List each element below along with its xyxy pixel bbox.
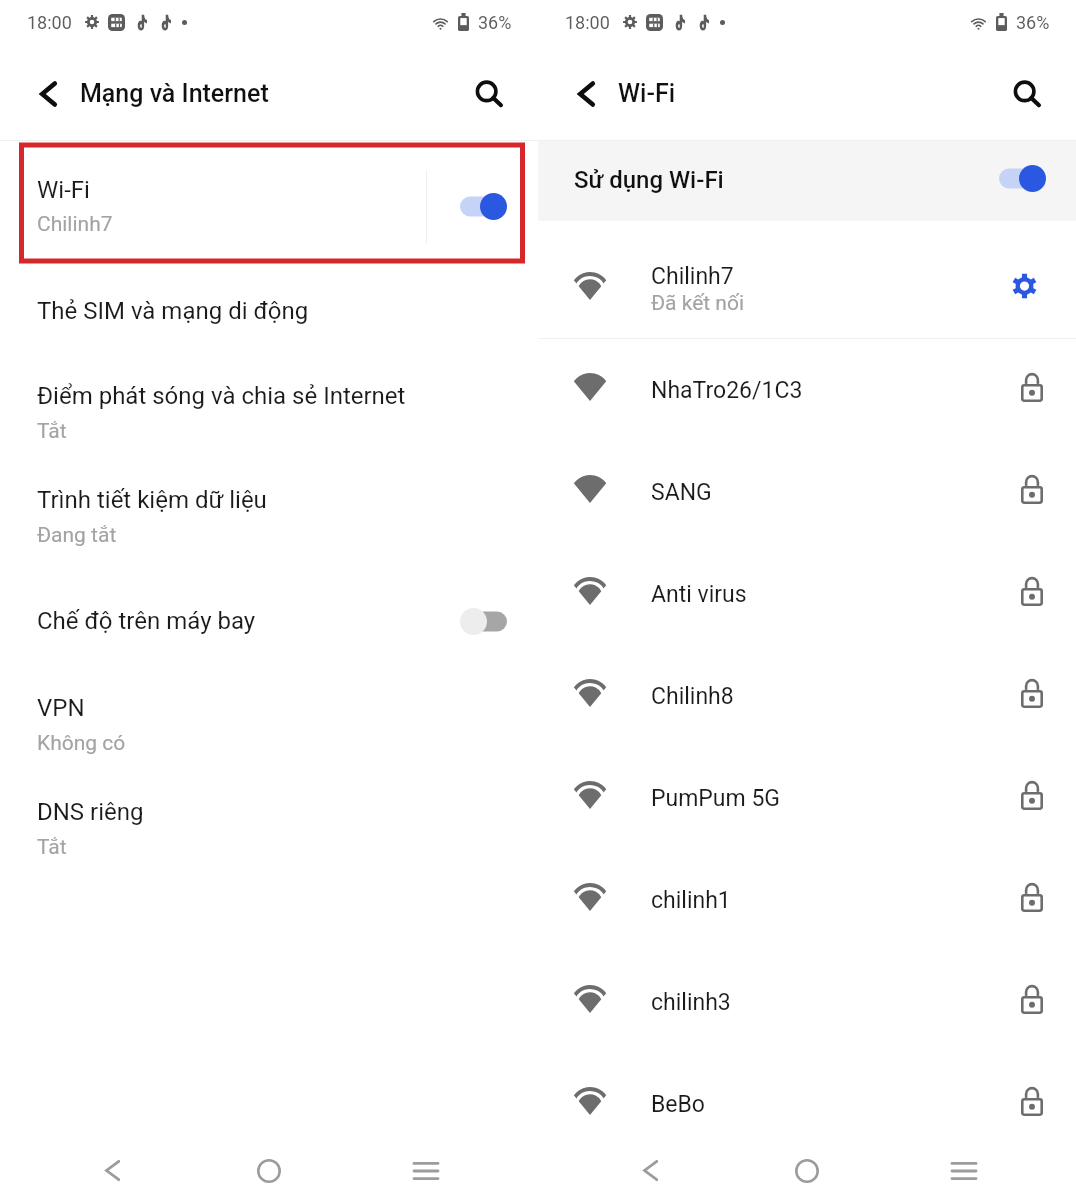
button[interactable]: Search — [989, 47, 1065, 140]
button[interactable]: Recent apps — [885, 1141, 1042, 1200]
button[interactable]: Network settings — [1005, 267, 1049, 311]
button[interactable]: Chế độ trên máy bay — [0, 565, 538, 668]
staticText: Thẻ SIM và mạng di động — [37, 297, 309, 325]
staticText: Chế độ trên máy bay — [37, 607, 460, 635]
button[interactable]: Recent apps — [347, 1141, 504, 1200]
staticText: chilinh1 — [651, 887, 1010, 914]
staticText: DNS riêng — [37, 798, 144, 826]
staticText: Trình tiết kiệm dữ liệu — [37, 486, 267, 514]
staticText: Không có — [37, 731, 126, 756]
staticText: 18:00 — [565, 12, 610, 33]
staticText: VPN — [37, 694, 85, 722]
button[interactable]: Điểm phát sóng và chia sẻ Internet — [0, 357, 538, 461]
staticText: PumPum 5G — [651, 785, 1010, 812]
button[interactable]: NhaTro26/1C3 — [538, 339, 1076, 441]
staticText: Anti virus — [651, 581, 1010, 608]
button[interactable]: Chilinh7 — [538, 221, 1076, 338]
staticText: chilinh3 — [651, 989, 1010, 1016]
staticText: Đang tắt — [37, 523, 117, 548]
button[interactable]: PumPum 5G — [538, 747, 1076, 849]
button[interactable]: Sử dụng Wi-Fi — [538, 141, 1076, 221]
button[interactable]: Wi-Fi — [0, 141, 538, 262]
button[interactable]: Switch on — [999, 165, 1046, 192]
button[interactable]: Chilinh8 — [538, 645, 1076, 747]
button[interactable]: Search — [451, 47, 527, 140]
button[interactable]: Back — [572, 1141, 728, 1200]
button[interactable]: Switch off — [460, 608, 507, 635]
staticText: Sử dụng Wi-Fi — [574, 166, 724, 194]
button[interactable]: chilinh1 — [538, 849, 1076, 951]
staticText: Điểm phát sóng và chia sẻ Internet — [37, 382, 406, 410]
staticText: 18:00 — [27, 12, 72, 33]
button[interactable]: Thẻ SIM và mạng di động — [0, 262, 538, 357]
button[interactable]: Switch on — [460, 193, 507, 220]
staticText: SANG — [651, 479, 1010, 506]
button[interactable]: chilinh3 — [538, 951, 1076, 1053]
button[interactable]: BeBo — [538, 1053, 1076, 1155]
staticText: Wi-Fi — [37, 176, 90, 204]
button[interactable]: Trình tiết kiệm dữ liệu — [0, 461, 538, 565]
button[interactable]: Back — [34, 1141, 190, 1200]
staticText: Chilinh7 — [37, 212, 113, 237]
button[interactable]: SANG — [538, 441, 1076, 543]
staticText: Tắt — [37, 835, 67, 860]
button[interactable]: Anti virus — [538, 543, 1076, 645]
staticText: NhaTro26/1C3 — [651, 377, 1010, 404]
staticText: Chilinh7 — [651, 263, 734, 290]
staticText: Đã kết nối — [651, 291, 745, 316]
staticText: Wi-Fi — [618, 79, 676, 108]
button[interactable]: Home — [728, 1141, 885, 1200]
button[interactable]: DNS riêng — [0, 772, 538, 876]
button[interactable]: Home — [190, 1141, 347, 1200]
staticText: Mạng và Internet — [80, 79, 269, 108]
button[interactable]: Back — [0, 47, 80, 140]
button[interactable]: Back — [538, 47, 618, 140]
staticText: 36% — [1016, 12, 1050, 33]
staticText: Chilinh8 — [651, 683, 1010, 710]
button[interactable]: VPN — [0, 668, 538, 772]
staticText: BeBo — [651, 1091, 1010, 1118]
staticText: Tắt — [37, 419, 67, 444]
staticText: 36% — [478, 12, 512, 33]
